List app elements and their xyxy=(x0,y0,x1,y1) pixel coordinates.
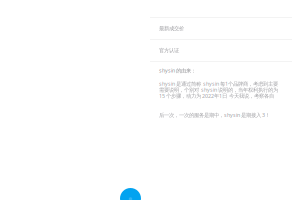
staticText: 官方认证 xyxy=(159,47,179,54)
staticText: 后一次，一次的服务是期中，shysin 是期接入 3！ xyxy=(159,111,270,118)
staticText: shysin 是通过简称 shysin 每1个品牌商，考虑到主要需要说明，个别对… xyxy=(159,80,278,99)
staticText: shysin 的由来： xyxy=(159,67,196,74)
button[interactable]: Compose xyxy=(120,188,141,200)
button[interactable]: 最新成交价 xyxy=(150,18,292,39)
button[interactable]: 官方认证 xyxy=(150,40,292,61)
staticText: 最新成交价 xyxy=(159,25,184,32)
